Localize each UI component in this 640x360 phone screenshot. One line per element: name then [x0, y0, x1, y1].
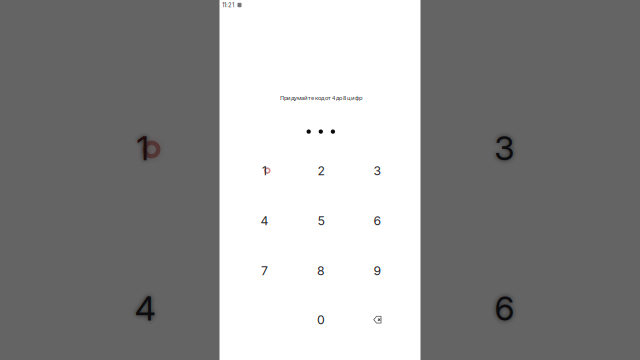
- staticText: 6: [373, 213, 381, 228]
- staticText: 1: [136, 128, 149, 168]
- staticText: 8: [317, 263, 325, 278]
- staticText: 4: [135, 288, 156, 328]
- staticText: 2: [317, 163, 324, 178]
- button[interactable]: 7: [241, 250, 287, 292]
- staticText: 3: [373, 163, 381, 178]
- button[interactable]: 6: [354, 200, 400, 242]
- staticText: 1: [262, 163, 267, 178]
- button[interactable]: 1: [241, 150, 287, 192]
- button[interactable]: 8: [298, 250, 344, 292]
- staticText: 11:21: [222, 1, 234, 9]
- button[interactable]: 9: [354, 250, 400, 292]
- staticText: 4: [260, 213, 268, 228]
- staticText: 9: [373, 263, 381, 278]
- staticText: 0: [317, 312, 325, 327]
- button[interactable]: 5: [298, 200, 344, 242]
- staticText: 5: [317, 213, 324, 228]
- button[interactable]: 4: [241, 200, 287, 242]
- button[interactable]: 2: [298, 150, 344, 192]
- staticText: 6: [494, 288, 514, 328]
- staticText: Придумайте код от 4 до 8 цифр: [280, 94, 362, 102]
- button[interactable]: Delete: [354, 299, 400, 341]
- button[interactable]: 0: [298, 299, 344, 341]
- button[interactable]: 3: [354, 150, 400, 192]
- staticText: 3: [494, 128, 514, 168]
- staticText: 7: [261, 263, 268, 278]
